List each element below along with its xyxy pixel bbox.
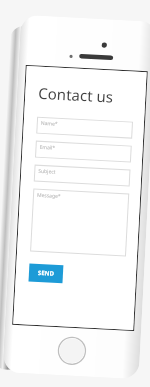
staticText: Name* [41, 120, 58, 128]
staticText: Email* [39, 144, 56, 152]
button[interactable]: Home [56, 335, 88, 366]
button[interactable]: Name* [37, 118, 132, 138]
staticText: SEND [38, 269, 54, 278]
button[interactable]: Email* [36, 142, 131, 162]
button[interactable]: Message* [31, 190, 128, 255]
staticText: Subject [38, 168, 56, 176]
staticText: Message* [37, 192, 61, 200]
staticText: Contact us [38, 83, 114, 107]
button[interactable]: Subject [35, 166, 129, 185]
button[interactable]: SEND [28, 263, 63, 283]
